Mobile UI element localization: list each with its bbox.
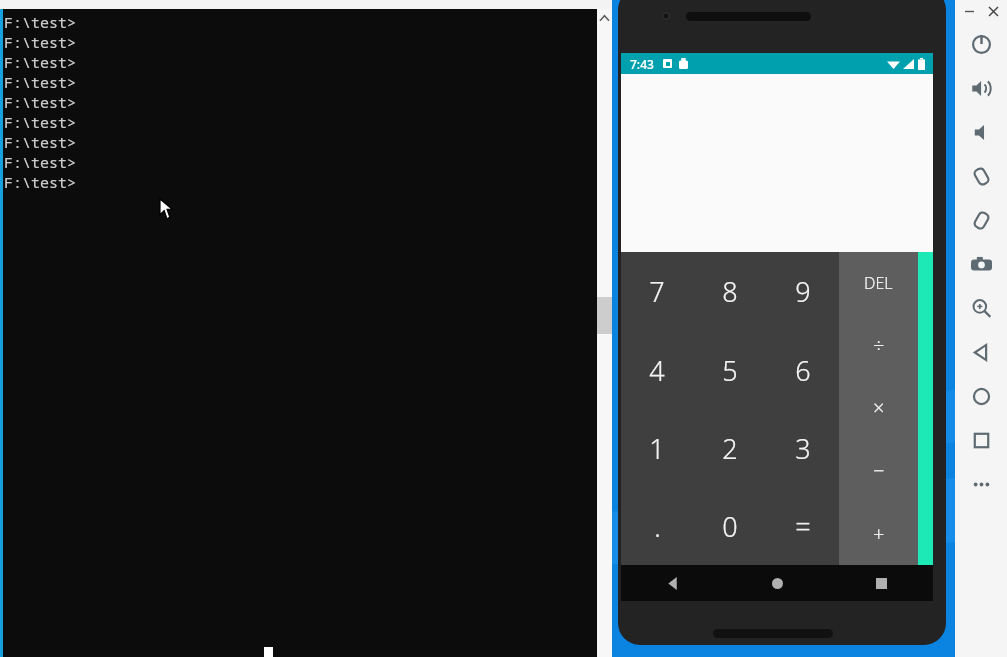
button[interactable]: + xyxy=(839,502,918,565)
staticText: = xyxy=(795,508,811,545)
staticText: 7 xyxy=(649,273,665,310)
button[interactable]: Volume down xyxy=(955,110,1007,154)
button[interactable]: Power xyxy=(955,22,1007,66)
staticText: F:\test> xyxy=(4,112,77,132)
staticText: × xyxy=(873,394,885,421)
button[interactable]: Home xyxy=(725,565,829,601)
button[interactable]: 5 xyxy=(693,331,766,409)
staticText: F:\test> xyxy=(4,52,77,72)
staticText: F:\test> xyxy=(4,32,77,52)
staticText: 7:43 xyxy=(630,56,654,72)
button[interactable]: 4 xyxy=(621,331,693,409)
button[interactable]: Overview xyxy=(955,418,1007,462)
button[interactable]: More options xyxy=(955,462,1007,506)
staticText: 5 xyxy=(722,352,738,389)
button[interactable]: Close xyxy=(983,1,1003,21)
staticText: F:\test> xyxy=(4,172,77,192)
button[interactable]: × xyxy=(839,376,918,439)
staticText: 9 xyxy=(795,273,811,310)
staticText: 6 xyxy=(795,352,811,389)
button[interactable]: Zoom xyxy=(955,286,1007,330)
button[interactable]: 0 xyxy=(693,487,766,565)
staticText: F:\test> xyxy=(4,72,77,92)
button[interactable]: Back xyxy=(955,330,1007,374)
staticText: 2 xyxy=(722,430,738,467)
button[interactable]: Rotate left xyxy=(955,154,1007,198)
button[interactable]: ÷ xyxy=(839,314,918,376)
staticText: 8 xyxy=(722,273,738,310)
staticText: ÷ xyxy=(873,332,885,359)
button[interactable]: Volume up xyxy=(955,66,1007,110)
staticText: . xyxy=(654,508,661,545)
button[interactable]: 6 xyxy=(766,331,839,409)
button[interactable]: = xyxy=(766,487,839,565)
button[interactable]: 3 xyxy=(766,409,839,487)
button[interactable]: 2 xyxy=(693,409,766,487)
button[interactable]: Back xyxy=(621,565,725,601)
button[interactable]: 7 xyxy=(621,252,693,331)
staticText: 3 xyxy=(795,430,811,467)
staticText: F:\test> xyxy=(4,92,77,112)
button[interactable]: . xyxy=(621,487,693,565)
staticText: − xyxy=(873,457,885,484)
staticText: 1 xyxy=(649,430,665,467)
staticText: 4 xyxy=(649,352,665,389)
staticText: + xyxy=(873,520,885,547)
staticText: F:\test> xyxy=(4,152,77,172)
button[interactable]: 1 xyxy=(621,409,693,487)
button[interactable]: Minimize xyxy=(959,1,979,21)
button[interactable]: 8 xyxy=(693,252,766,331)
staticText: 0 xyxy=(722,508,738,545)
staticText: F:\test> xyxy=(4,132,77,152)
button[interactable]: DEL xyxy=(839,252,918,314)
staticText: DEL xyxy=(864,272,893,294)
button[interactable]: − xyxy=(839,439,918,502)
button[interactable]: Rotate right xyxy=(955,198,1007,242)
button[interactable]: Take screenshot xyxy=(955,242,1007,286)
button[interactable]: 9 xyxy=(766,252,839,331)
button[interactable]: Home xyxy=(955,374,1007,418)
button[interactable]: Recent apps xyxy=(829,565,933,601)
staticText: F:\test> xyxy=(4,12,77,32)
